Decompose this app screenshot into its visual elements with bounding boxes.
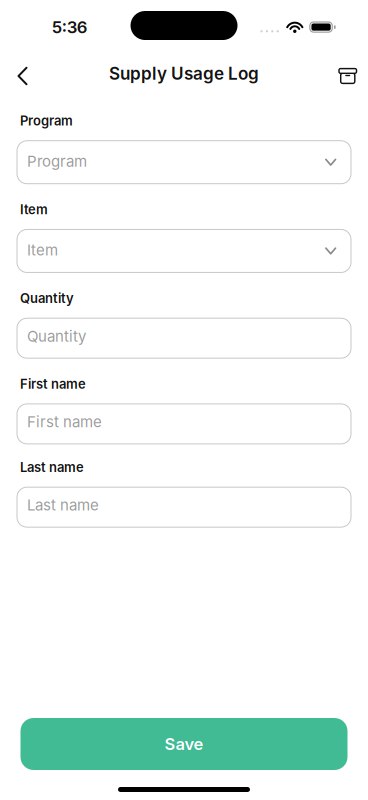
button[interactable]: Quantity: [16, 318, 351, 359]
button[interactable]: Program: [16, 140, 351, 184]
button[interactable]: Last name: [16, 487, 351, 528]
staticText: Program: [27, 152, 87, 170]
staticText: Item: [20, 202, 48, 217]
staticText: 5:36: [52, 17, 87, 37]
staticText: Program: [20, 113, 73, 129]
staticText: Quantity: [27, 327, 86, 345]
staticText: First name: [20, 376, 86, 392]
staticText: Last name: [27, 496, 99, 514]
button[interactable]: Save: [20, 718, 347, 770]
button[interactable]: First name: [16, 403, 351, 444]
button[interactable]: Back: [0, 54, 38, 98]
staticText: Save: [164, 734, 203, 754]
staticText: Item: [27, 241, 58, 259]
staticText: Quantity: [20, 290, 74, 306]
staticText: Supply Usage Log: [109, 63, 259, 84]
button[interactable]: Item: [16, 229, 351, 273]
staticText: Last name: [20, 459, 84, 475]
staticText: First name: [27, 413, 102, 431]
button[interactable]: Archive: [329, 54, 368, 98]
